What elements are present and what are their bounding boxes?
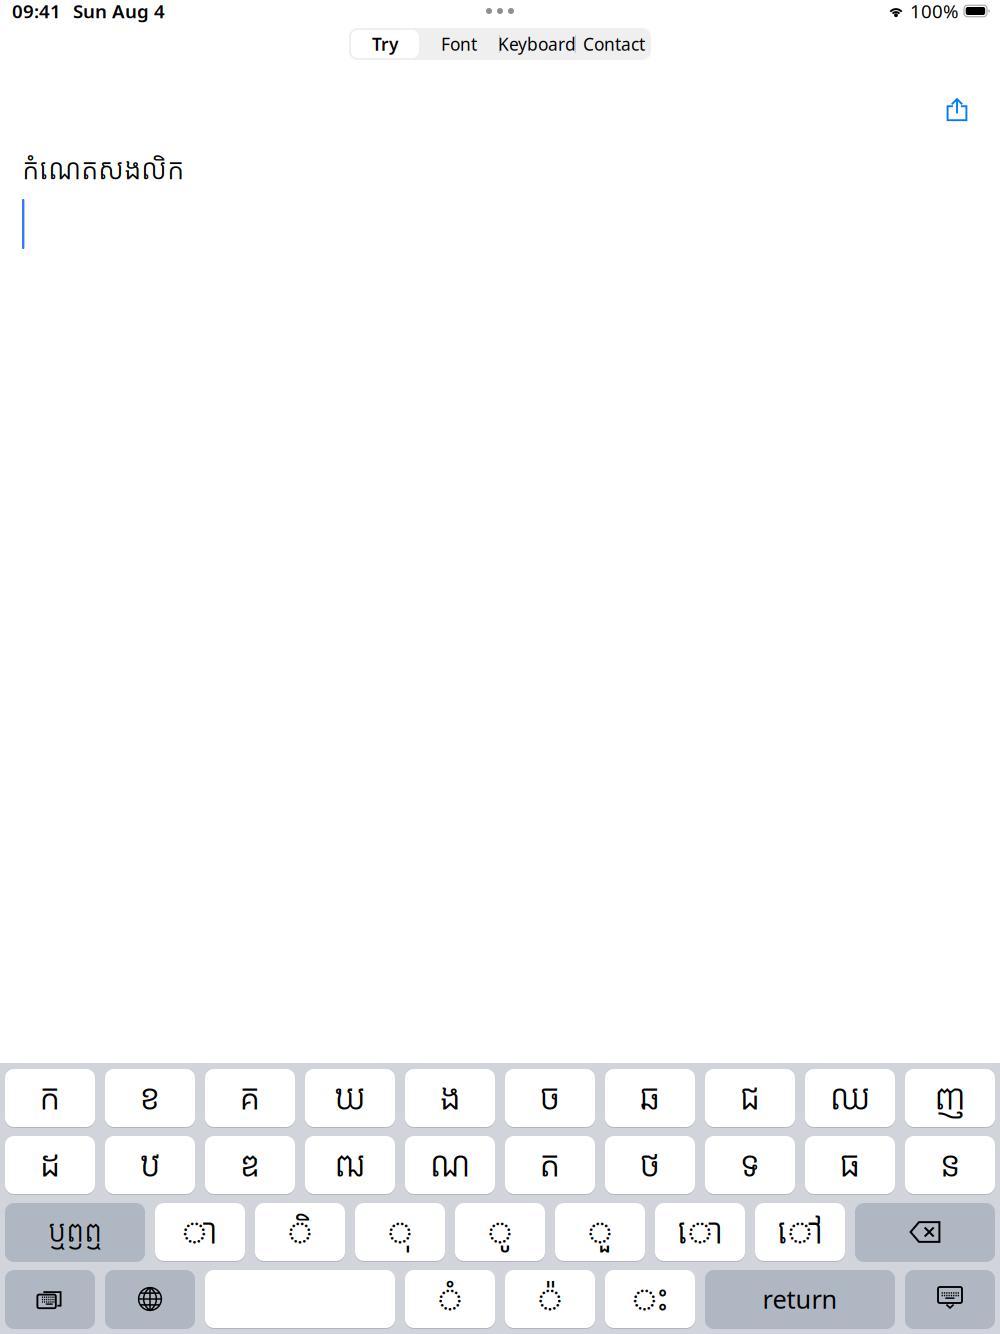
staticText: ◌ោ (676, 1211, 723, 1252)
staticText: ថ (639, 1144, 661, 1185)
staticText: ◌ុ (387, 1211, 412, 1252)
staticText: កំណេតសងលិក (22, 153, 184, 186)
button[interactable]: ឌ (205, 1136, 295, 1194)
staticText: ◌ិ (287, 1211, 312, 1252)
staticText: ឆ (639, 1077, 661, 1118)
staticText: ◌ួ (587, 1211, 612, 1252)
button[interactable]: ន (905, 1136, 995, 1194)
staticText: ឋ (139, 1144, 160, 1185)
button[interactable]: Space (205, 1270, 395, 1328)
staticText: Font (441, 32, 477, 55)
staticText: ត (539, 1144, 561, 1185)
button[interactable]: ◌ិ (255, 1203, 345, 1261)
button[interactable]: Contact (577, 28, 651, 60)
button[interactable]: ឃ (305, 1069, 395, 1127)
button[interactable]: ◌ំ (405, 1270, 495, 1328)
button[interactable]: ◌ុ (355, 1203, 445, 1261)
button[interactable]: ◌ា (155, 1203, 245, 1261)
staticText: Keyboard (498, 32, 576, 55)
staticText: 100% (910, 0, 959, 23)
button[interactable]: ក (5, 1069, 95, 1127)
button[interactable]: return (705, 1270, 895, 1328)
button[interactable]: ថ (605, 1136, 695, 1194)
button[interactable]: ត (505, 1136, 595, 1194)
staticText: ន (940, 1144, 960, 1185)
button[interactable]: ដ (5, 1136, 95, 1194)
staticText: ◌៉ (537, 1278, 562, 1319)
button[interactable]: Delete (855, 1203, 995, 1261)
button[interactable]: ◌ូ (455, 1203, 545, 1261)
staticText: Contact (583, 32, 645, 55)
button[interactable]: ឆ (605, 1069, 695, 1127)
button[interactable]: Next keyboard (105, 1270, 195, 1328)
button[interactable]: Try (349, 28, 421, 60)
button[interactable]: គ (205, 1069, 295, 1127)
button[interactable]: Share (935, 82, 979, 126)
button[interactable]: ជ (705, 1069, 795, 1127)
staticText: ឬឭឮ (48, 1215, 102, 1249)
staticText: ទ (740, 1144, 760, 1185)
button[interactable]: ◌ៅ (755, 1203, 845, 1261)
button[interactable]: ទ (705, 1136, 795, 1194)
staticText: ក (39, 1077, 61, 1118)
button[interactable]: ង (405, 1069, 495, 1127)
staticText: គ (239, 1077, 261, 1118)
staticText: ង (439, 1077, 460, 1118)
staticText: return (762, 1282, 837, 1316)
button[interactable]: ណ (405, 1136, 495, 1194)
staticText: ជ (739, 1077, 760, 1118)
button[interactable]: ឍ (305, 1136, 395, 1194)
button[interactable]: Switch keyboard (5, 1270, 95, 1328)
staticText: ឈ (829, 1077, 870, 1118)
button[interactable]: ◌ោ (655, 1203, 745, 1261)
button[interactable]: ឬឭឮ (5, 1203, 145, 1261)
staticText: ◌ះ (632, 1278, 668, 1319)
button[interactable]: ◌៉ (505, 1270, 595, 1328)
staticText: ឌ (240, 1144, 260, 1185)
staticText: ធ (839, 1144, 861, 1185)
staticText: ខ (139, 1077, 160, 1118)
staticText: ដ (39, 1144, 60, 1185)
staticText: ◌ូ (487, 1211, 512, 1252)
button[interactable]: Keyboard (497, 28, 577, 60)
button[interactable]: ឋ (105, 1136, 195, 1194)
staticText: ឃ (334, 1077, 366, 1118)
staticText: Sun Aug 4 (73, 0, 165, 23)
staticText: ឍ (334, 1144, 366, 1185)
staticText: ណ (429, 1144, 470, 1185)
button[interactable]: ញ (905, 1069, 995, 1127)
staticText: ញ (934, 1077, 966, 1118)
button[interactable]: ឈ (805, 1069, 895, 1127)
button[interactable]: Hide keyboard (905, 1270, 995, 1328)
staticText: ◌ៅ (776, 1211, 823, 1252)
button[interactable]: ◌ះ (605, 1270, 695, 1328)
button[interactable]: ◌ួ (555, 1203, 645, 1261)
staticText: 09:41 (12, 0, 61, 23)
staticText: ◌ំ (437, 1278, 462, 1319)
button[interactable]: ធ (805, 1136, 895, 1194)
button[interactable]: Font (421, 28, 497, 60)
button[interactable]: ច (505, 1069, 595, 1127)
button[interactable]: ខ (105, 1069, 195, 1127)
staticText: Try (372, 32, 398, 55)
staticText: ច (539, 1077, 561, 1118)
staticText: ◌ា (182, 1211, 218, 1252)
